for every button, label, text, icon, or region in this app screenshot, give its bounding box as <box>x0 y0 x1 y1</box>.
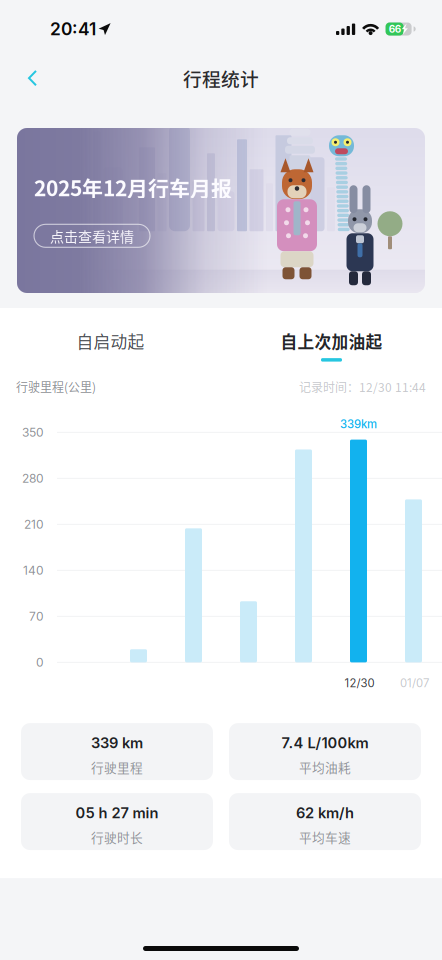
staticText: 20:41 <box>50 18 96 39</box>
staticText: 140 <box>23 563 44 578</box>
staticText: 05 h 27 min <box>75 804 158 822</box>
button[interactable]: 7.4 L/100km <box>229 723 421 780</box>
button[interactable]: 2025年12月行车月报 <box>17 128 425 293</box>
staticText: 7.4 L/100km <box>281 734 368 752</box>
button[interactable]: 返回 <box>0 59 56 96</box>
staticText: 350 <box>22 425 44 440</box>
staticText: 12/30 <box>344 676 374 690</box>
button[interactable]: 62 km/h <box>229 793 421 850</box>
staticText: 70 <box>29 609 44 624</box>
staticText: 339km <box>340 417 377 431</box>
staticText: 自上次加油起 <box>280 329 382 353</box>
button[interactable]: 339 km <box>21 723 213 780</box>
staticText: 平均油耗 <box>299 758 351 776</box>
staticText: 0 <box>36 655 44 670</box>
staticText: 66 <box>389 23 401 35</box>
button[interactable]: 05 h 27 min <box>21 793 213 850</box>
staticText: 记录时间：12/30 11:44 <box>299 378 426 395</box>
staticText: 62 km/h <box>296 804 354 822</box>
staticText: 平均车速 <box>299 828 351 846</box>
staticText: 行驶里程 <box>91 758 143 776</box>
staticText: 点击查看详情 <box>50 226 134 246</box>
staticText: 280 <box>22 471 44 486</box>
button[interactable]: 自启动起 <box>0 308 221 376</box>
button[interactable]: 自上次加油起 <box>221 308 442 376</box>
staticText: 自启动起 <box>76 329 144 353</box>
staticText: 339 km <box>91 734 143 752</box>
staticText: 行驶时长 <box>91 828 143 846</box>
staticText: 01/07 <box>400 676 429 690</box>
staticText: 2025年12月行车月报 <box>34 172 232 202</box>
staticText: 210 <box>24 517 44 532</box>
staticText: 行程统计 <box>183 64 259 91</box>
staticText: 行驶里程(公里) <box>16 378 96 395</box>
